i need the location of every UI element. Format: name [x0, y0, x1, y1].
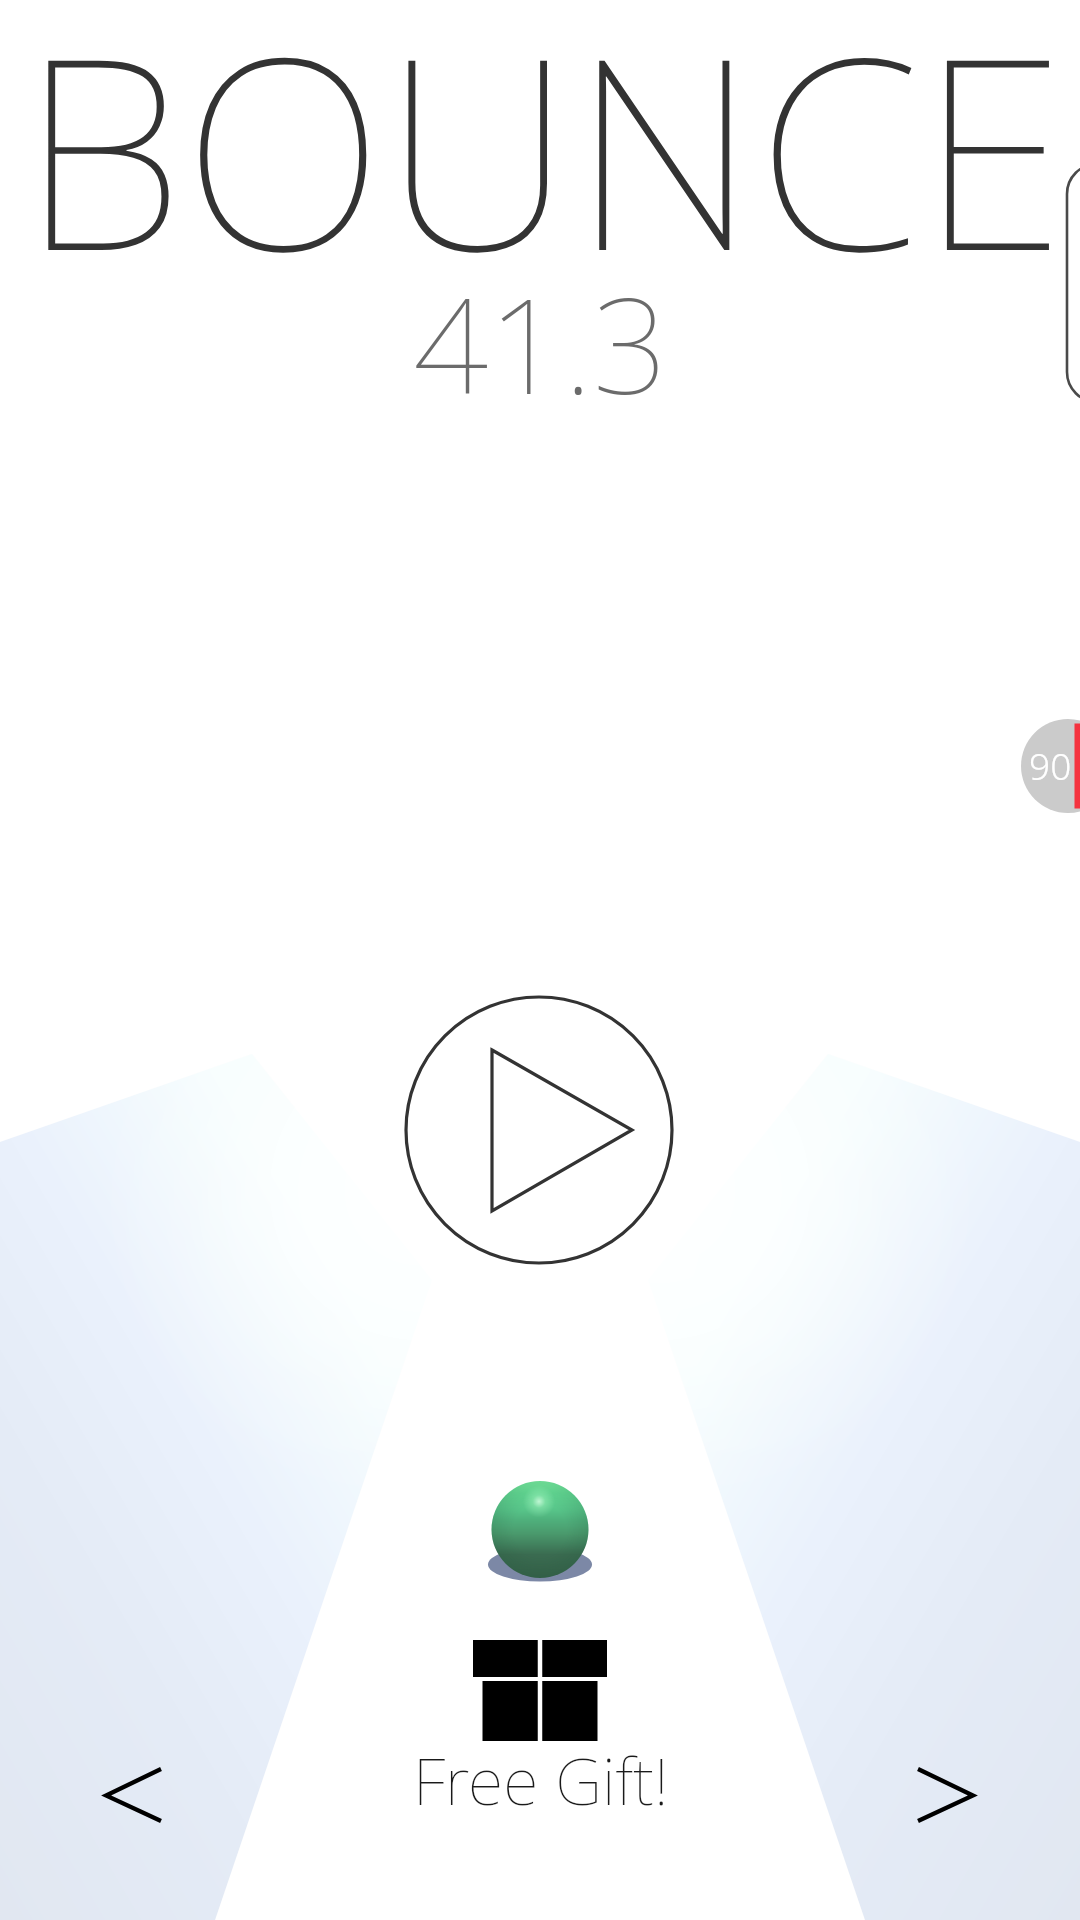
staticText: 41.3 [413, 253, 668, 433]
button[interactable]: Settings [1067, 164, 1080, 402]
button[interactable]: Next ball [860, 1715, 1020, 1875]
staticText: 90 [1029, 740, 1072, 790]
button[interactable]: Coins: 90 [1021, 719, 1080, 814]
button[interactable]: Free Gift! [400, 1630, 680, 1820]
staticText: BOUNCE [21, 0, 1066, 328]
button[interactable]: Play [406, 997, 673, 1264]
staticText: Free Gift! [413, 1736, 669, 1825]
button[interactable]: Previous ball [60, 1715, 220, 1875]
